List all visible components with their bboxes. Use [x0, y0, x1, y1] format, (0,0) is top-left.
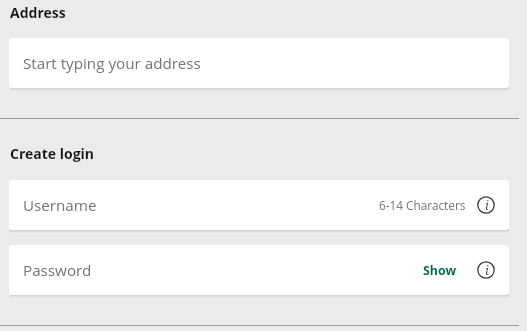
staticText: Username: [23, 195, 97, 216]
staticText: Create login: [10, 144, 95, 163]
button[interactable]: Show: [421, 256, 458, 285]
button[interactable]: Username requirements: [474, 193, 498, 217]
staticText: 6-14 Characters: [379, 197, 466, 213]
staticText: Show: [423, 262, 456, 279]
button[interactable]: Password: [9, 245, 509, 295]
button[interactable]: Password requirements: [474, 258, 498, 282]
button[interactable]: Start typing your address: [9, 38, 509, 88]
staticText: i: [485, 262, 489, 279]
staticText: Password: [23, 260, 92, 281]
staticText: i: [485, 197, 489, 214]
staticText: Start typing your address: [23, 53, 201, 74]
staticText: Address: [10, 3, 66, 22]
button[interactable]: Username: [9, 180, 509, 230]
